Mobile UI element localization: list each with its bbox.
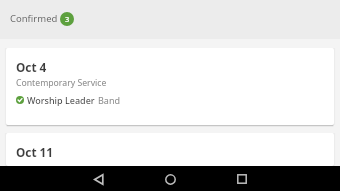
button[interactable]: Oct 4 — [6, 48, 334, 125]
button[interactable]: Recent apps — [230, 167, 254, 191]
button[interactable]: Home — [158, 167, 182, 191]
staticText: Oct 4 — [16, 59, 47, 75]
staticText: Band — [98, 94, 120, 106]
staticText: 3 — [65, 14, 70, 24]
button[interactable]: Back — [87, 167, 111, 191]
button[interactable]: 3 confirmed — [60, 12, 74, 26]
button[interactable]: Oct 11 — [6, 133, 334, 166]
staticText: Oct 11 — [16, 144, 54, 160]
staticText: Contemporary Service — [16, 77, 107, 89]
staticText: Confirmed — [10, 12, 58, 25]
staticText: Worship Leader — [27, 94, 95, 106]
